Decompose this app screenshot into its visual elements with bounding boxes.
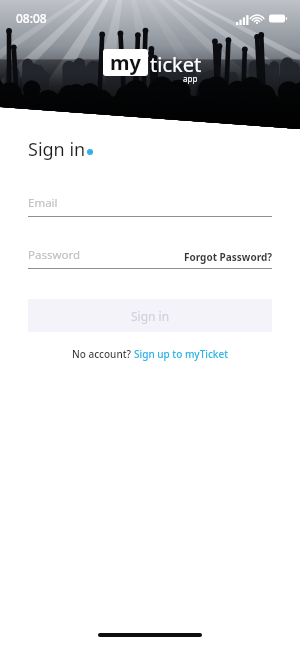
staticText: Password xyxy=(28,247,81,263)
staticText: Email xyxy=(28,195,58,211)
staticText: Forgot Password? xyxy=(184,250,273,264)
staticText: ticket xyxy=(150,51,202,78)
staticText: Sign in xyxy=(131,308,170,324)
button[interactable]: Sign up to myTicket xyxy=(134,347,229,361)
staticText: Sign up to myTicket xyxy=(134,347,229,361)
staticText: app xyxy=(183,73,198,84)
staticText: my xyxy=(110,49,141,76)
button[interactable]: Forgot Password? xyxy=(184,249,273,265)
staticText: No account? xyxy=(72,347,134,361)
button[interactable]: Email xyxy=(28,193,272,217)
button[interactable]: Password xyxy=(28,245,272,269)
staticText: 08:08 xyxy=(16,10,47,26)
button[interactable]: Sign in xyxy=(28,299,272,332)
staticText: Sign in xyxy=(28,137,86,162)
